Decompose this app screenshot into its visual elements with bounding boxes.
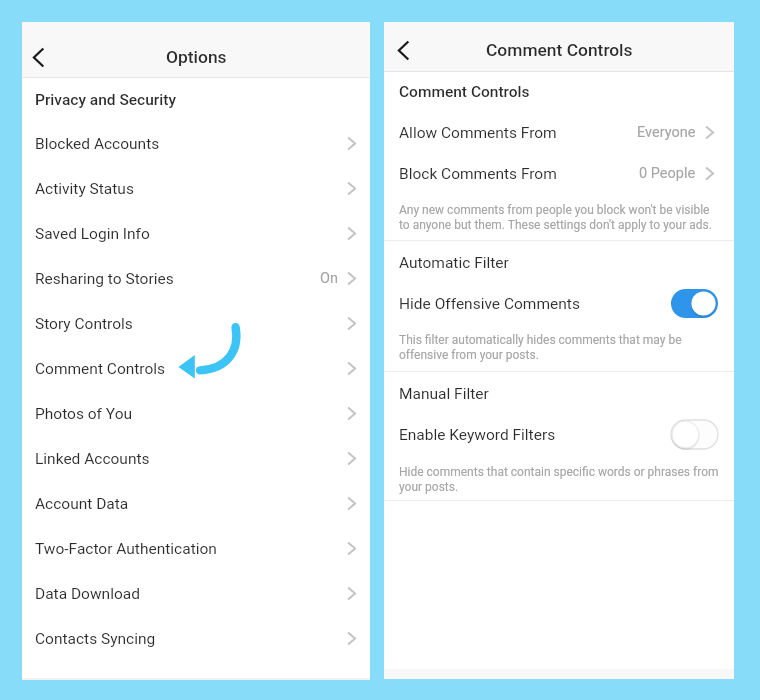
staticText: Photos of You bbox=[35, 405, 133, 423]
staticText: 0 People bbox=[639, 165, 696, 182]
staticText: On bbox=[320, 270, 338, 287]
staticText: Hide Offensive Comments bbox=[399, 295, 580, 313]
staticText: Automatic Filter bbox=[399, 254, 509, 272]
button[interactable]: Hide Offensive Comments bbox=[384, 283, 734, 324]
staticText: Everyone bbox=[637, 124, 696, 141]
staticText: Account Data bbox=[35, 495, 129, 513]
staticText: Options bbox=[166, 47, 227, 67]
button[interactable]: Story Controls bbox=[22, 301, 370, 346]
staticText: Enable Keyword Filters bbox=[399, 426, 556, 444]
button[interactable]: Resharing to Stories bbox=[22, 256, 370, 301]
button[interactable]: Contacts Syncing bbox=[22, 616, 370, 661]
staticText: Contacts Syncing bbox=[35, 630, 156, 648]
button[interactable]: Back bbox=[24, 39, 53, 76]
staticText: Block Comments From bbox=[399, 165, 557, 183]
staticText: Privacy and Security bbox=[35, 91, 176, 109]
button[interactable]: Activity Status bbox=[22, 166, 370, 211]
button[interactable]: Account Data bbox=[22, 481, 370, 526]
button[interactable]: Data Download bbox=[22, 571, 370, 616]
button[interactable]: Linked Accounts bbox=[22, 436, 370, 481]
button[interactable]: Allow Comments From bbox=[384, 112, 734, 153]
staticText: Saved Login Info bbox=[35, 225, 150, 243]
staticText: Activity Status bbox=[35, 180, 134, 198]
button[interactable]: Back bbox=[389, 32, 418, 69]
staticText: Comment Controls bbox=[399, 83, 530, 101]
staticText: Data Download bbox=[35, 585, 140, 603]
button[interactable]: Toggle off bbox=[671, 420, 718, 449]
staticText: Blocked Accounts bbox=[35, 135, 160, 153]
button[interactable]: Toggle on bbox=[671, 289, 718, 318]
button[interactable]: Photos of You bbox=[22, 391, 370, 436]
button[interactable]: Block Comments From bbox=[384, 153, 734, 194]
button[interactable]: Enable Keyword Filters bbox=[384, 414, 734, 455]
staticText: Manual Filter bbox=[399, 385, 489, 403]
button[interactable]: Comment Controls bbox=[22, 346, 370, 391]
staticText: Hide comments that contain specific word… bbox=[399, 465, 744, 494]
staticText: Two-Factor Authentication bbox=[35, 540, 217, 558]
staticText: Resharing to Stories bbox=[35, 270, 174, 288]
staticText: Allow Comments From bbox=[399, 124, 557, 142]
staticText: Linked Accounts bbox=[35, 450, 150, 468]
staticText: This filter automatically hides comments… bbox=[399, 333, 744, 362]
staticText: Any new comments from people you block w… bbox=[399, 203, 744, 232]
staticText: Story Controls bbox=[35, 315, 133, 333]
button[interactable]: Blocked Accounts bbox=[22, 121, 370, 166]
staticText: Comment Controls bbox=[35, 360, 166, 378]
staticText: Comment Controls bbox=[486, 40, 633, 60]
button[interactable]: Two-Factor Authentication bbox=[22, 526, 370, 571]
button[interactable]: Saved Login Info bbox=[22, 211, 370, 256]
